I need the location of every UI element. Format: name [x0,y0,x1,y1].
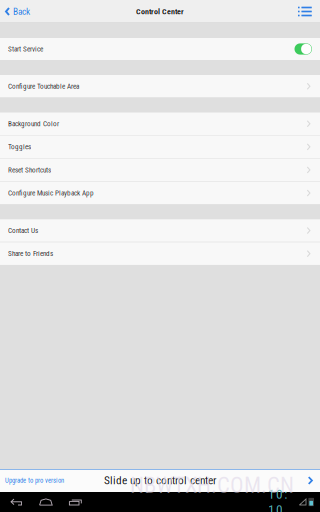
staticText: Share to Friends [8,249,53,258]
staticText: Slide up to control center [104,474,216,487]
button[interactable]: Back [0,492,31,512]
button[interactable]: Home [31,492,61,512]
button[interactable]: Contact Us [0,219,320,242]
button[interactable]: Configure Touchable Area [0,75,320,97]
staticText: Back [13,6,30,17]
button[interactable]: Configure Music Playback App [0,182,320,204]
button[interactable]: Open control center [302,469,320,492]
staticText: Upgrade to pro version [5,477,64,484]
button[interactable]: Share to Friends [0,242,320,265]
button[interactable]: Toggles [0,136,320,158]
button[interactable]: Recent apps [61,492,90,512]
button[interactable]: Menu [288,0,320,23]
button[interactable]: Reset Shortcuts [0,159,320,181]
staticText: Start Service [8,45,43,53]
button[interactable]: Upgrade to pro version [0,469,69,492]
staticText: Background Color [8,119,59,128]
button[interactable]: Slide up to control center [0,469,320,492]
staticText: Configure Music Playback App [8,189,94,197]
staticText: Reset Shortcuts [8,166,51,174]
staticText: Configure Touchable Area [8,82,79,90]
staticText: NBWTXH.COM.CN [130,472,294,498]
staticText: Control Center [136,7,184,16]
button[interactable]: Background Color [0,112,320,135]
button[interactable]: Start Service [0,38,320,60]
staticText: Toggles [8,143,31,151]
staticText: Contact Us [8,226,38,235]
staticText: 10:10 [268,486,295,512]
button[interactable]: Back [0,0,38,23]
